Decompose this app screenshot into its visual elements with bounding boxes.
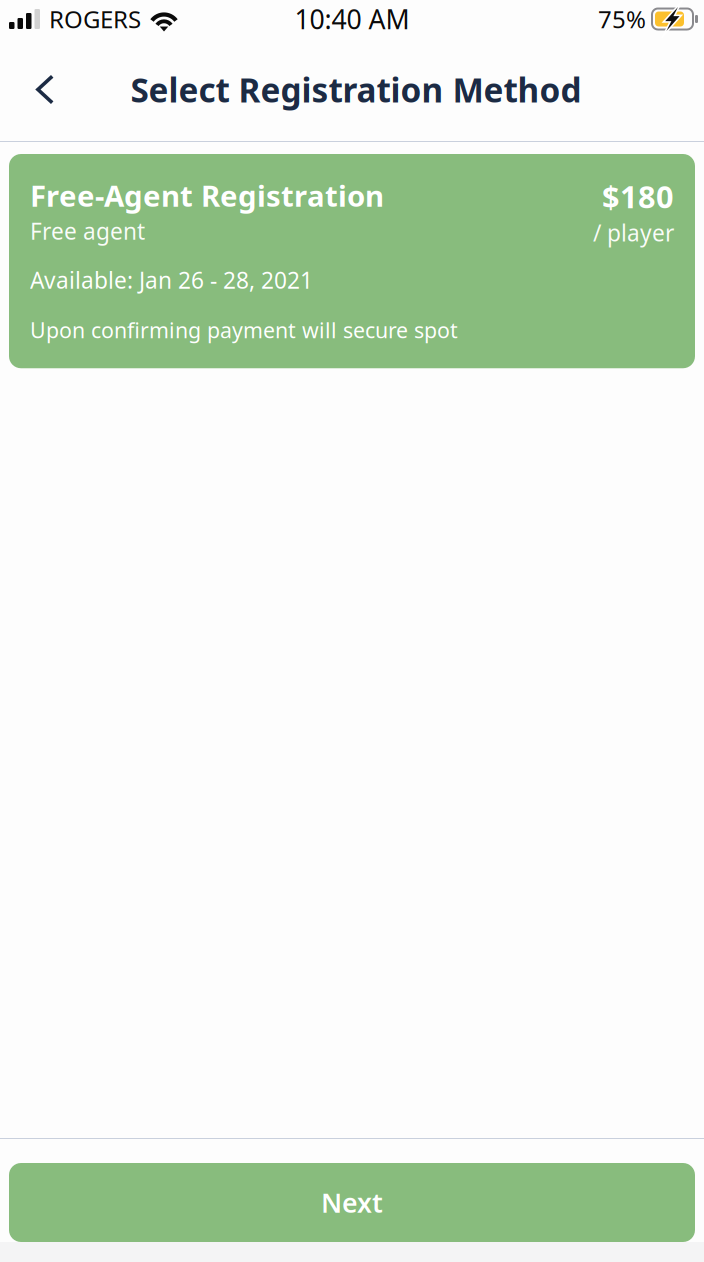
staticText: Available: Jan 26 - 28, 2021: [30, 265, 313, 295]
staticText: $180: [602, 176, 674, 217]
staticText: Upon confirming payment will secure spot: [30, 316, 458, 344]
button[interactable]: Back: [0, 58, 76, 120]
button[interactable]: Free-Agent Registration: [9, 154, 695, 368]
staticText: Select Registration Method: [130, 67, 581, 112]
staticText: / player: [593, 218, 674, 248]
staticText: Free agent: [30, 216, 145, 246]
staticText: ROGERS: [49, 3, 141, 35]
staticText: 75%: [598, 3, 646, 35]
button[interactable]: Next: [9, 1163, 695, 1242]
staticText: Free-Agent Registration: [30, 176, 384, 215]
staticText: 10:40 AM: [294, 1, 409, 37]
staticText: Next: [321, 1185, 383, 1220]
